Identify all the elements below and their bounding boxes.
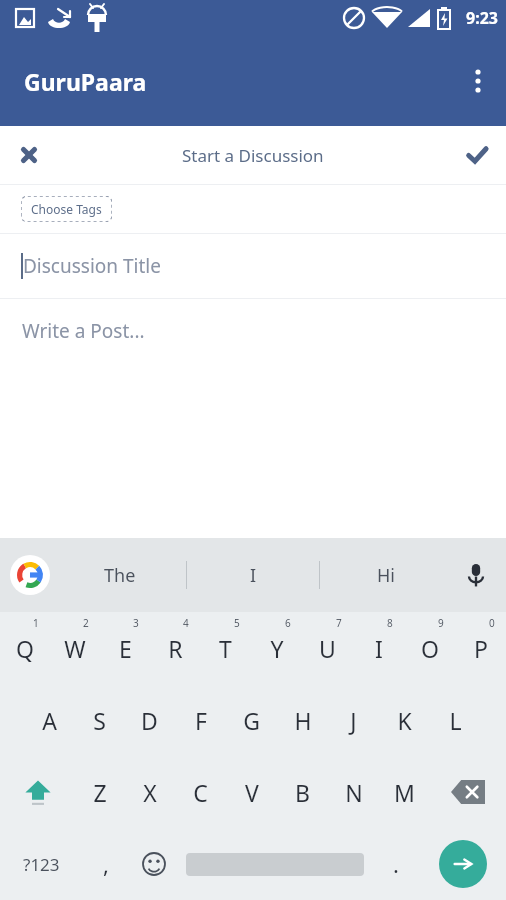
staticText: Start a Discussion — [182, 144, 324, 167]
button[interactable]: L — [430, 684, 481, 756]
button[interactable]: Enter — [420, 828, 506, 900]
staticText: 5 — [234, 616, 240, 630]
staticText: F — [195, 705, 207, 736]
staticText: , — [103, 849, 109, 879]
staticText: 0 — [489, 616, 495, 630]
button[interactable]: Y — [251, 612, 302, 684]
button[interactable]: Emoji — [130, 828, 178, 900]
button[interactable]: U — [302, 612, 353, 684]
staticText: M — [394, 777, 415, 808]
staticText: G — [243, 705, 260, 736]
staticText: Discussion Title — [23, 253, 161, 279]
button[interactable]: J — [328, 684, 379, 756]
staticText: L — [449, 705, 462, 736]
staticText: R — [168, 633, 183, 664]
button[interactable]: Hi — [320, 538, 452, 612]
button[interactable]: D — [124, 684, 175, 756]
button[interactable]: Q — [0, 612, 50, 684]
staticText: Y — [270, 633, 284, 664]
button[interactable]: Write a Post... — [0, 299, 506, 363]
button[interactable]: H — [277, 684, 328, 756]
button[interactable]: I — [187, 538, 319, 612]
button[interactable]: The — [54, 538, 186, 612]
button[interactable]: C — [175, 756, 226, 828]
button[interactable]: T — [200, 612, 251, 684]
staticText: K — [397, 705, 412, 736]
button[interactable]: O — [404, 612, 455, 684]
button[interactable]: Shift — [0, 756, 75, 828]
staticText: S — [93, 705, 106, 736]
button[interactable]: R — [150, 612, 200, 684]
staticText: P — [474, 633, 488, 664]
staticText: Q — [16, 633, 34, 664]
button[interactable]: S — [74, 684, 124, 756]
staticText: T — [219, 633, 232, 664]
button[interactable]: Google — [6, 551, 54, 599]
staticText: 7 — [336, 616, 342, 630]
staticText: I — [375, 633, 383, 664]
staticText: GuruPaara — [24, 66, 147, 97]
staticText: Z — [93, 777, 107, 808]
button[interactable]: V — [226, 756, 277, 828]
staticText: Choose Tags — [31, 201, 102, 217]
staticText: Hi — [377, 563, 395, 588]
staticText: . — [393, 849, 399, 879]
staticText: 9:23 — [466, 7, 498, 29]
button[interactable]: B — [277, 756, 328, 828]
staticText: B — [295, 777, 310, 808]
button[interactable]: A — [24, 684, 74, 756]
staticText: D — [141, 705, 158, 736]
button[interactable]: E — [100, 612, 150, 684]
button[interactable]: F — [175, 684, 226, 756]
button[interactable]: W — [50, 612, 100, 684]
staticText: W — [64, 633, 86, 664]
button[interactable]: Close — [0, 126, 58, 184]
staticText: 3 — [133, 616, 139, 630]
button[interactable]: Backspace — [430, 756, 506, 828]
staticText: H — [294, 705, 312, 736]
staticText: C — [193, 777, 208, 808]
button[interactable]: . — [372, 828, 420, 900]
button[interactable]: N — [328, 756, 379, 828]
button[interactable]: Choose Tags — [21, 196, 112, 222]
button[interactable]: , — [82, 828, 130, 900]
staticText: ?123 — [23, 853, 60, 876]
staticText: 1 — [33, 616, 39, 630]
staticText: 9 — [438, 616, 444, 630]
button[interactable]: P — [455, 612, 506, 684]
button[interactable]: Done — [448, 126, 506, 184]
button[interactable]: X — [125, 756, 175, 828]
staticText: O — [421, 633, 439, 664]
button[interactable]: Z — [75, 756, 125, 828]
staticText: 4 — [183, 616, 189, 630]
staticText: 2 — [83, 616, 89, 630]
button[interactable]: M — [379, 756, 430, 828]
button[interactable]: More options — [450, 53, 506, 109]
staticText: A — [42, 705, 57, 736]
staticText: U — [319, 633, 336, 664]
button[interactable]: Voice input — [452, 551, 500, 599]
staticText: N — [345, 777, 363, 808]
staticText: I — [250, 563, 257, 588]
staticText: J — [350, 705, 357, 736]
button[interactable]: K — [379, 684, 430, 756]
staticText: V — [245, 777, 259, 808]
staticText: 6 — [285, 616, 291, 630]
button[interactable]: ?123 — [0, 828, 82, 900]
button[interactable]: I — [353, 612, 404, 684]
button[interactable]: G — [226, 684, 277, 756]
staticText: X — [143, 777, 157, 808]
staticText: 8 — [387, 616, 393, 630]
button[interactable]: Space — [178, 828, 372, 900]
staticText: Write a Post... — [22, 318, 145, 344]
staticText: The — [104, 563, 136, 588]
staticText: E — [119, 633, 132, 664]
